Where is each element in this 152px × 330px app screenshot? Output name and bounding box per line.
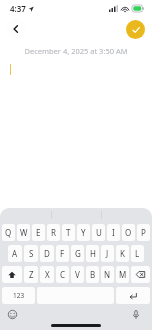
staticText: 123 [13, 291, 25, 300]
button[interactable]: L [131, 245, 144, 262]
staticText: D [44, 248, 50, 259]
staticText: Y [81, 227, 86, 238]
button[interactable]: V [71, 266, 84, 283]
staticText: X [45, 269, 50, 280]
staticText: K [120, 248, 125, 259]
button[interactable]: O [122, 224, 135, 241]
staticText: O [125, 227, 132, 238]
button[interactable]: Back [6, 19, 26, 39]
staticText: N [104, 269, 111, 280]
button[interactable]: Emoji [6, 308, 18, 320]
staticText: E [36, 227, 41, 238]
staticText: J [106, 248, 109, 259]
staticText: U [96, 227, 102, 238]
button[interactable]: K [116, 245, 129, 262]
button[interactable]: S [24, 245, 38, 262]
button[interactable]: G [71, 245, 84, 262]
button[interactable]: H [86, 245, 99, 262]
button[interactable]: F [56, 245, 69, 262]
staticText: P [141, 227, 146, 238]
button[interactable]: W [17, 224, 30, 241]
button[interactable]: Dictate [130, 308, 142, 320]
button[interactable]: R [47, 224, 60, 241]
staticText: M [119, 269, 127, 280]
staticText: T [66, 227, 71, 238]
staticText: December 4, 2025 at 3:50 AM [0, 46, 152, 56]
button[interactable]: T [62, 224, 75, 241]
button[interactable]: Delete [131, 266, 150, 283]
button[interactable]: C [56, 266, 69, 283]
staticText: 4:37 [10, 3, 26, 14]
staticText: W [20, 227, 28, 238]
staticText: V [75, 269, 80, 280]
staticText: H [90, 248, 96, 259]
button[interactable]: D [40, 245, 54, 262]
button[interactable]: Shift [2, 266, 22, 283]
button[interactable]: Z [24, 266, 38, 283]
staticText: R [51, 227, 56, 238]
staticText: G [75, 248, 81, 259]
button[interactable]: P [137, 224, 150, 241]
staticText: A [12, 248, 18, 259]
button[interactable]: I [107, 224, 120, 241]
staticText: L [135, 248, 140, 259]
button[interactable]: X [40, 266, 54, 283]
staticText: Q [5, 227, 12, 238]
button[interactable]: B [86, 266, 99, 283]
staticText: B [90, 269, 96, 280]
button[interactable]: Done [126, 20, 145, 39]
button[interactable]: E [32, 224, 45, 241]
button[interactable]: Y [77, 224, 90, 241]
button[interactable]: Return [116, 287, 150, 304]
button[interactable]: 123 [2, 287, 35, 304]
button[interactable]: J [101, 245, 114, 262]
staticText: C [60, 269, 66, 280]
button[interactable]: Q [2, 224, 15, 241]
staticText: I [112, 227, 115, 238]
staticText: F [60, 248, 65, 259]
button[interactable]: M [116, 266, 129, 283]
button[interactable]: U [92, 224, 105, 241]
button[interactable]: N [101, 266, 114, 283]
staticText: Z [29, 269, 34, 280]
button[interactable]: A [8, 245, 22, 262]
staticText: S [29, 248, 34, 259]
